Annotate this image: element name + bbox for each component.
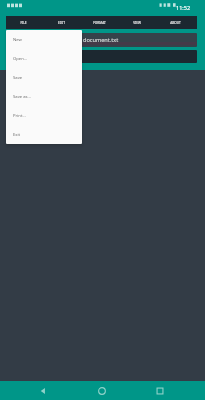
button[interactable]: Print... (6, 106, 82, 125)
staticText: VIEW (133, 21, 141, 25)
button[interactable]: Back (36, 384, 50, 398)
staticText: document.txt (83, 36, 119, 44)
button[interactable]: document.txt (7, 33, 197, 47)
button[interactable]: Recent apps (153, 384, 167, 398)
staticText: Open... (13, 56, 28, 62)
staticText: Print... (13, 113, 26, 119)
button[interactable]: EDIT (42, 16, 80, 29)
button[interactable]: Exit (6, 125, 82, 144)
button[interactable]: New (6, 30, 82, 49)
button[interactable]: FILE (4, 16, 42, 29)
staticText: Exit (13, 132, 21, 138)
button[interactable]: Home (95, 384, 109, 398)
staticText: Save as... (13, 94, 31, 100)
staticText: New (13, 37, 22, 43)
button[interactable] (7, 50, 197, 63)
button[interactable]: ABOUT (156, 16, 194, 29)
staticText: FORMAT (93, 21, 106, 25)
button[interactable]: Save as... (6, 87, 82, 106)
staticText: ABOUT (170, 21, 181, 25)
staticText: 11:52 (176, 4, 191, 11)
button[interactable]: Save (6, 68, 82, 87)
staticText: Save (13, 75, 23, 81)
button[interactable]: VIEW (118, 16, 156, 29)
button[interactable]: FORMAT (80, 16, 118, 29)
staticText: FILE (20, 21, 27, 25)
staticText: EDIT (58, 21, 65, 25)
button[interactable]: Open... (6, 49, 82, 68)
